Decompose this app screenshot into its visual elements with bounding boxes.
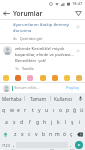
button[interactable]: Symbols: [0, 141, 11, 149]
button[interactable]: Backspace: [75, 128, 85, 140]
button[interactable]: Paylaş: [64, 84, 82, 92]
button[interactable]: s: [10, 116, 18, 128]
button[interactable]: Emoji: [76, 75, 82, 81]
staticText: 1s: [15, 66, 19, 71]
button[interactable]: Send message: [73, 141, 85, 149]
staticText: zebinde Kesinlikle! miyok: [15, 46, 65, 52]
staticText: ş: [71, 119, 74, 126]
button[interactable]: Emoji: [27, 75, 33, 81]
button[interactable]: ş: [69, 116, 76, 128]
staticText: a: [5, 119, 8, 126]
button[interactable]: Back: [0, 7, 13, 19]
button[interactable]: b: [40, 128, 47, 140]
staticText: z: [14, 131, 17, 138]
staticText: Çevirisini gör: [20, 36, 43, 41]
button[interactable]: a: [2, 116, 10, 128]
button[interactable]: r: [22, 104, 29, 116]
button[interactable]: ü: [78, 104, 85, 116]
staticText: #unutma: [13, 28, 32, 34]
staticText: Yanıtla: [22, 66, 34, 71]
button[interactable]: Like: [74, 23, 81, 30]
button[interactable]: Send: [72, 7, 85, 19]
button[interactable]: v: [33, 128, 40, 140]
button[interactable]: Emoji: [3, 75, 9, 81]
button[interactable]: f: [26, 116, 34, 128]
button[interactable]: Emoji: [15, 75, 21, 81]
staticText: i: [79, 119, 81, 126]
staticText: g: [36, 119, 40, 126]
staticText: başardılar, elinde ve podcast ntles: [15, 52, 74, 58]
button[interactable]: t: [29, 104, 36, 116]
button[interactable]: q: [0, 104, 8, 116]
staticText: b: [42, 131, 46, 138]
staticText: Merhaba: [2, 96, 22, 102]
staticText: .: [70, 142, 72, 149]
button[interactable]: zebinde Kesinlikle! miyok: [0, 44, 85, 73]
button[interactable]: g: [34, 116, 41, 128]
staticText: Yorum ekle...: [14, 85, 40, 91]
button[interactable]: Like comment: [74, 47, 81, 54]
staticText: m: [55, 131, 60, 138]
staticText: r: [24, 107, 27, 114]
button[interactable]: w: [8, 104, 15, 116]
staticText: v: [35, 131, 38, 138]
button[interactable]: i: [76, 116, 83, 128]
staticText: w: [10, 107, 14, 114]
button[interactable]: ğ: [71, 104, 78, 116]
staticText: x: [21, 131, 24, 138]
staticText: u: [45, 107, 49, 114]
staticText: e: [17, 107, 20, 114]
button[interactable]: Voice input: [76, 93, 85, 104]
staticText: ü: [80, 107, 84, 114]
staticText: Kullanıcı: [54, 96, 73, 102]
button[interactable]: Comma: [11, 141, 16, 149]
button[interactable]: Merhaba: [0, 93, 24, 104]
button[interactable]: Kullanıcı: [51, 93, 76, 104]
button[interactable]: y: [36, 104, 43, 116]
staticText: Paylaş: [66, 85, 80, 91]
staticText: d: [20, 119, 24, 126]
staticText: f: [29, 119, 31, 126]
staticText: Yorumlar: [13, 9, 43, 18]
button[interactable]: k: [55, 116, 62, 128]
staticText: k: [57, 119, 60, 126]
button[interactable]: n: [47, 128, 54, 140]
staticText: Tamam: [30, 96, 46, 102]
staticText: 18:47: [72, 1, 83, 6]
staticText: Benediktin çok!: [15, 58, 47, 64]
staticText: ğ: [73, 107, 77, 114]
button[interactable]: m: [54, 128, 61, 140]
button[interactable]: Emoji: [52, 75, 58, 81]
staticText: j: [51, 119, 53, 126]
button[interactable]: z: [11, 128, 19, 140]
button[interactable]: j: [48, 116, 55, 128]
button[interactable]: Tamam: [25, 93, 50, 104]
staticText: t: [32, 107, 34, 114]
button[interactable]: Emoji: [64, 75, 70, 81]
button[interactable]: ö: [61, 128, 68, 140]
button[interactable]: u: [43, 104, 50, 116]
button[interactable]: #yorumlarım #takip #etmeyi: [0, 20, 85, 43]
button[interactable]: d: [18, 116, 26, 128]
staticText: n: [49, 131, 53, 138]
button[interactable]: h: [41, 116, 48, 128]
staticText: h: [43, 119, 47, 126]
button[interactable]: ç: [68, 128, 75, 140]
staticText: s: [13, 119, 16, 126]
button[interactable]: x: [19, 128, 26, 140]
button[interactable]: o: [57, 104, 64, 116]
staticText: p: [66, 107, 70, 114]
button[interactable]: c: [26, 128, 33, 140]
staticText: ,: [13, 142, 15, 149]
button[interactable]: Emoji: [40, 75, 46, 81]
button[interactable]: p: [64, 104, 71, 116]
staticText: ?123: [2, 143, 10, 148]
button[interactable]: ı: [50, 104, 57, 116]
staticText: 4s: [13, 36, 17, 41]
button[interactable]: l: [62, 116, 69, 128]
staticText: ı: [53, 107, 55, 114]
button[interactable]: e: [15, 104, 22, 116]
button[interactable]: Shift: [0, 128, 11, 140]
button[interactable]: Period: [68, 141, 73, 149]
